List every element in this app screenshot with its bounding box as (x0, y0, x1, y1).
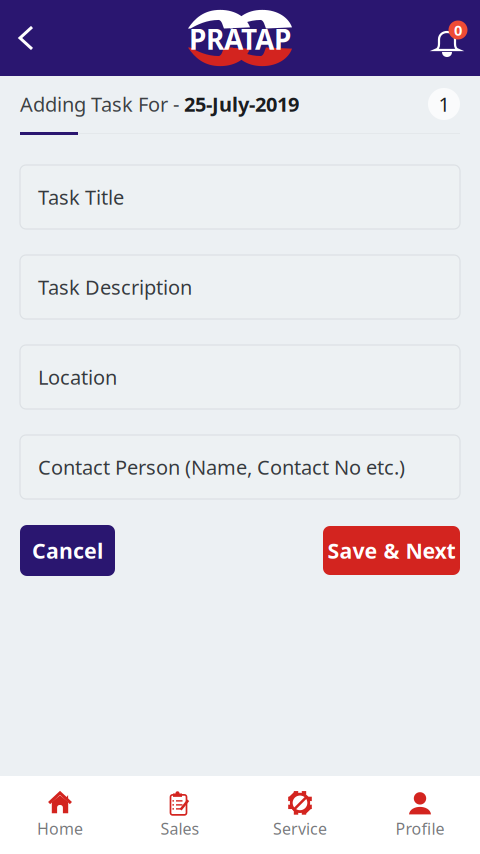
button[interactable]: Home (0, 778, 120, 852)
button[interactable]: Profile (360, 778, 480, 852)
staticText: Profile (395, 818, 444, 839)
button[interactable]: Sales (120, 778, 240, 852)
staticText: Task Title (38, 184, 124, 210)
staticText: Home (37, 818, 83, 839)
button[interactable]: Cancel (20, 525, 115, 576)
staticText: 0 (454, 20, 462, 40)
staticText: Contact Person (Name, Contact No etc.) (38, 454, 405, 480)
staticText: Location (38, 364, 117, 390)
staticText: Save & Next (327, 536, 455, 565)
staticText: Service (273, 818, 327, 839)
staticText: PRATAP (189, 20, 291, 58)
staticText: 25-July-2019 (184, 91, 299, 117)
staticText: Cancel (32, 536, 103, 565)
button[interactable]: Save & Next (323, 526, 460, 575)
staticText: 1 (438, 91, 449, 117)
button[interactable]: Back (0, 0, 62, 76)
button[interactable]: Notifications (418, 0, 480, 76)
staticText: Task Description (38, 274, 192, 300)
staticText: Sales (160, 818, 199, 839)
staticText: Adding Task For - (20, 91, 184, 117)
button[interactable]: Service (240, 778, 360, 852)
